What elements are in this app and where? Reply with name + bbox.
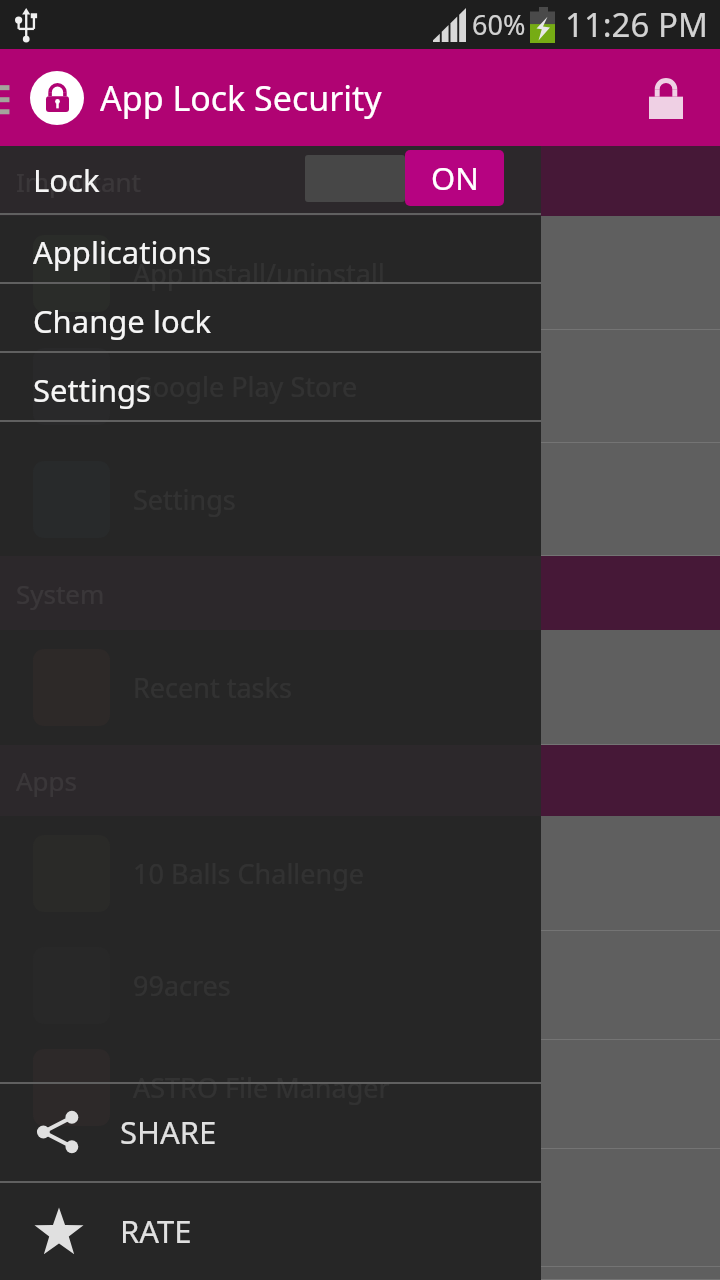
staticText: Settings — [133, 481, 236, 518]
button[interactable]: ASTRO File Manager — [0, 1040, 541, 1134]
staticText: 99acres — [133, 967, 231, 1004]
button[interactable]: SHARE — [0, 1082, 541, 1181]
staticText: System — [16, 576, 105, 611]
staticText: 10 Balls Challenge — [133, 855, 365, 892]
staticText: Apps — [16, 763, 78, 798]
staticText: App install/uninstall — [133, 255, 385, 292]
button[interactable]: Lock — [0, 146, 541, 215]
staticText: AirDroid — [133, 1190, 239, 1227]
staticText: ASTRO File Manager — [133, 1076, 390, 1113]
button[interactable]: ASTRO File Manager — [0, 1040, 720, 1149]
staticText: Lock — [33, 159, 100, 201]
staticText: SHARE — [120, 1111, 217, 1153]
staticText: Important — [16, 164, 142, 199]
staticText: Settings — [133, 481, 236, 518]
button[interactable]: App install/uninstall — [0, 216, 541, 330]
button[interactable]: Google Play Store — [0, 330, 541, 443]
button[interactable]: Google Play Store — [0, 330, 720, 443]
staticText: Apps — [16, 763, 78, 798]
staticText: 10 Balls Challenge — [133, 855, 365, 892]
button[interactable]: Amazon — [0, 1267, 720, 1280]
button[interactable]: Open navigation drawer — [0, 76, 13, 120]
staticText: Google Play Store — [133, 368, 358, 405]
staticText: 60% — [472, 6, 526, 43]
button[interactable]: 10 Balls Challenge — [0, 816, 720, 931]
staticText: 99acres — [133, 967, 231, 1004]
button[interactable]: AirDroid — [0, 1149, 720, 1267]
button[interactable]: Change lock — [0, 284, 541, 353]
staticText: ASTRO File Manager — [133, 1069, 390, 1106]
button[interactable]: Recent tasks — [0, 630, 720, 745]
staticText: App Lock Security — [100, 75, 382, 121]
button[interactable]: Settings — [0, 443, 720, 556]
staticText: Recent tasks — [133, 669, 292, 706]
staticText: RATE — [120, 1210, 192, 1252]
staticText: Important — [16, 164, 142, 199]
staticText: Applications — [33, 231, 212, 273]
staticText: Settings — [33, 369, 151, 411]
staticText: App install/uninstall — [133, 255, 385, 292]
staticText: Recent tasks — [133, 669, 292, 706]
button[interactable]: App install/uninstall — [0, 216, 720, 330]
button[interactable]: Settings — [0, 353, 541, 422]
staticText: System — [16, 576, 105, 611]
button[interactable]: Lock — [640, 72, 692, 124]
staticText: Change lock — [33, 300, 212, 342]
staticText: Google Play Store — [133, 368, 358, 405]
staticText: 11:26 PM — [565, 2, 708, 47]
button[interactable]: Applications — [0, 215, 541, 284]
button[interactable]: RATE — [0, 1181, 541, 1280]
staticText: ON — [431, 157, 479, 199]
button[interactable]: 99acres — [0, 931, 720, 1040]
